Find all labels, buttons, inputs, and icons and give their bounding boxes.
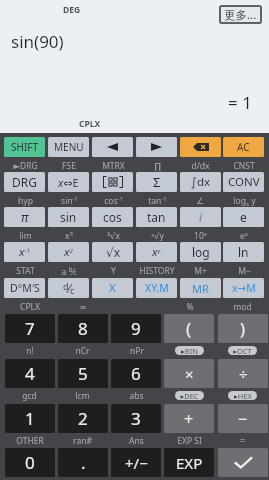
button[interactable]: x to power y <box>136 242 177 262</box>
staticText: ►DRG <box>13 160 38 171</box>
button[interactable]: 7 <box>5 314 55 343</box>
button[interactable]: 3 <box>111 404 161 433</box>
staticText: SHIFT <box>11 140 39 154</box>
staticText: sin <box>60 209 77 225</box>
button[interactable]: 6 <box>111 359 161 388</box>
button[interactable]: x to E <box>48 172 89 192</box>
staticText: CPLX <box>20 301 40 312</box>
staticText: π <box>21 209 29 226</box>
button[interactable]: 1 <box>5 404 55 433</box>
staticText: √x <box>106 244 120 260</box>
staticText: ▸BIN <box>181 346 198 355</box>
button[interactable]: Backspace <box>180 137 221 157</box>
button[interactable]: sin <box>48 207 89 227</box>
button[interactable]: ( <box>164 314 214 343</box>
button[interactable]: +/− <box>111 448 161 477</box>
staticText: ∞ <box>79 302 87 312</box>
button[interactable]: 9 <box>111 314 161 343</box>
staticText: ( <box>186 317 192 340</box>
button[interactable]: tan <box>136 207 177 227</box>
staticText: mod <box>233 301 252 312</box>
button[interactable]: cos <box>92 207 133 227</box>
staticText: Σ <box>153 173 161 191</box>
staticText: i <box>199 209 203 225</box>
button[interactable]: . <box>58 448 108 477</box>
staticText: cos <box>103 209 122 225</box>
staticText: ran# <box>73 435 92 446</box>
staticText: 1 <box>25 407 35 430</box>
button[interactable]: DRG <box>4 172 45 192</box>
button[interactable]: XY,M <box>136 278 177 298</box>
button[interactable]: Integral dx <box>180 172 221 192</box>
button[interactable]: √x <box>92 242 133 262</box>
button[interactable]: X <box>92 278 133 298</box>
button[interactable]: D°M′S <box>4 278 45 298</box>
staticText: XY,M <box>145 281 169 295</box>
staticText: ln <box>238 244 249 260</box>
staticText: CPLX <box>79 118 101 130</box>
staticText: nPr <box>130 345 144 356</box>
button[interactable]: AC <box>223 137 264 157</box>
button[interactable]: EXP <box>164 448 214 477</box>
staticText: ex <box>240 230 248 241</box>
staticText: hyp <box>18 195 33 206</box>
button[interactable]: MENU <box>48 137 89 157</box>
staticText: ˣ√y <box>151 230 164 241</box>
staticText: MENU <box>54 140 84 154</box>
button[interactable]: x squared <box>48 242 89 262</box>
button[interactable]: Matrix <box>92 172 133 192</box>
staticText: ▸DEC <box>180 391 199 400</box>
button[interactable]: ln <box>223 242 264 262</box>
staticText: ▸HEX <box>234 391 252 400</box>
staticText: 更多... <box>224 7 257 23</box>
staticText: ³√x <box>107 230 120 241</box>
button[interactable]: MR <box>180 278 221 298</box>
staticText: D°M′S <box>10 281 40 295</box>
staticText: n! <box>26 345 34 356</box>
button[interactable]: CONV <box>223 172 264 192</box>
staticText: HISTORY <box>139 265 175 276</box>
button[interactable]: 0 <box>5 448 55 477</box>
staticText: ÷ <box>239 364 248 384</box>
button[interactable]: d over c <box>48 278 89 298</box>
button[interactable]: x inverse <box>4 242 45 262</box>
button[interactable]: Move right <box>136 137 177 157</box>
button[interactable]: π <box>4 207 45 227</box>
button[interactable]: Σ <box>136 172 177 192</box>
button[interactable]: + <box>164 404 214 433</box>
staticText: ▸OCT <box>233 346 252 355</box>
button[interactable]: 4 <box>5 359 55 388</box>
button[interactable]: × <box>164 359 214 388</box>
button[interactable]: log <box>180 242 221 262</box>
button[interactable]: ÷ <box>218 359 268 388</box>
button[interactable]: x→M <box>223 278 264 298</box>
button[interactable]: SHIFT <box>4 137 45 157</box>
staticText: d/dx <box>191 160 210 171</box>
button[interactable]: − <box>218 404 268 433</box>
staticText: = <box>240 435 245 446</box>
staticText: DRG <box>12 174 37 190</box>
button[interactable]: 2 <box>58 404 108 433</box>
button[interactable]: i <box>180 207 221 227</box>
staticText: % <box>186 301 194 312</box>
staticText: sin-1 <box>61 195 78 206</box>
staticText: + <box>184 408 194 430</box>
button[interactable]: 5 <box>58 359 108 388</box>
staticText: sin(90) <box>11 30 64 53</box>
staticText: abs <box>129 390 144 401</box>
staticText: MTRX <box>102 160 125 171</box>
staticText: 9 <box>131 317 141 340</box>
button[interactable]: 更多... <box>219 5 262 24</box>
button[interactable]: Equals <box>218 448 268 477</box>
button[interactable]: e <box>223 207 264 227</box>
button[interactable]: 8 <box>58 314 108 343</box>
staticText: CNST <box>233 160 255 171</box>
staticText: log <box>192 244 210 260</box>
staticText: OTHER <box>16 435 44 446</box>
staticText: DEG <box>63 4 81 16</box>
button[interactable]: Move left <box>92 137 133 157</box>
button[interactable]: ) <box>218 314 268 343</box>
staticText: M− <box>238 265 251 276</box>
staticText: Y <box>111 265 116 276</box>
staticText: xy <box>152 244 161 260</box>
